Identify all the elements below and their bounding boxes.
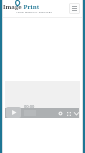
staticText: YOUR MEDICAL SERVICES xyxy=(16,10,53,13)
button[interactable]: Miniplayer xyxy=(65,110,72,117)
staticText: Print xyxy=(22,3,40,11)
button[interactable]: Menu xyxy=(69,3,80,14)
button[interactable]: Settings xyxy=(57,110,64,117)
staticText: 00:00 xyxy=(24,104,35,109)
button[interactable]: Fullscreen xyxy=(73,110,80,117)
staticText: Image xyxy=(3,3,22,11)
button[interactable]: Play xyxy=(6,107,21,118)
